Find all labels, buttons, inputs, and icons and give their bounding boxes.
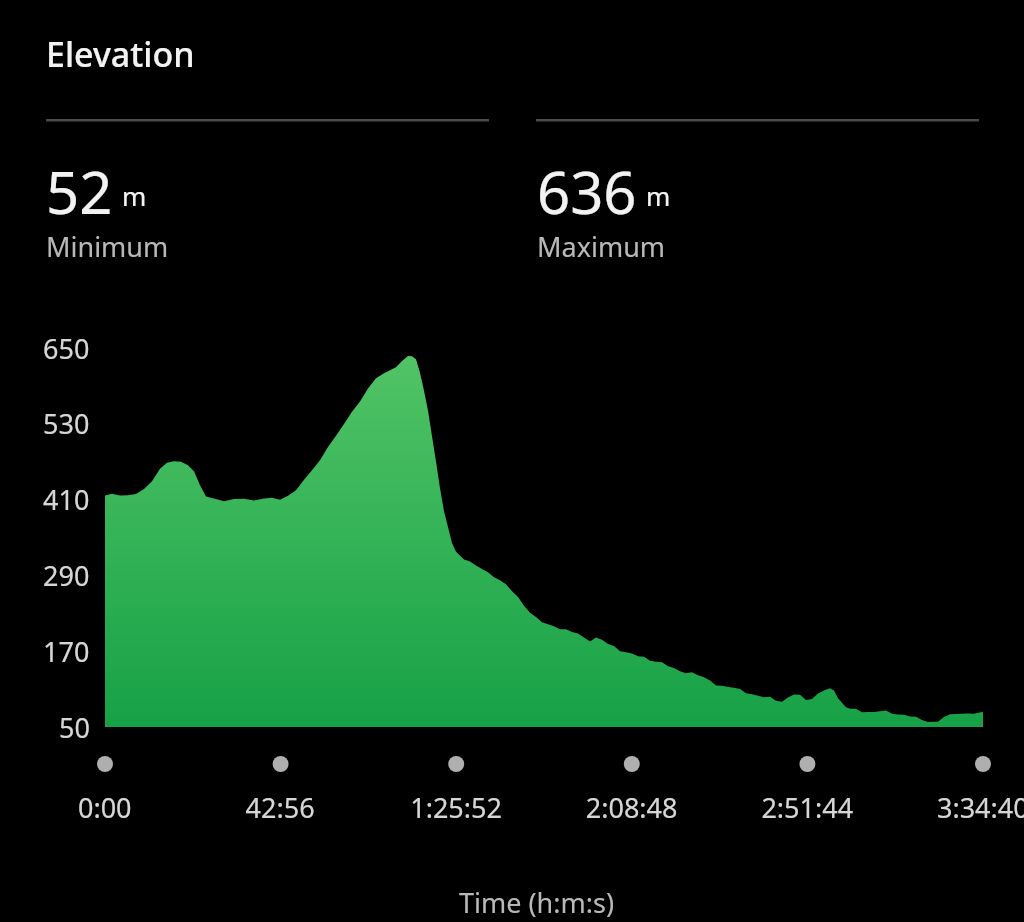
button[interactable]: Elevation chart xyxy=(0,0,1024,922)
